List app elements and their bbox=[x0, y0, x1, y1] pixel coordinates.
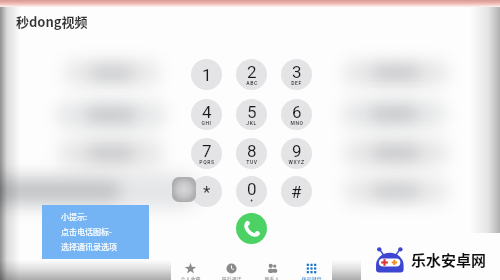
staticText: # bbox=[291, 182, 302, 202]
other: Recents bbox=[226, 263, 237, 274]
staticText: 5 bbox=[247, 102, 257, 122]
button[interactable]: Dialpad bbox=[292, 259, 330, 280]
staticText: 4 bbox=[202, 102, 212, 122]
staticText: 2 bbox=[247, 62, 257, 82]
staticText: 联系人 bbox=[264, 275, 280, 280]
button[interactable]: 4 bbox=[191, 99, 222, 130]
button[interactable]: 2 bbox=[236, 59, 267, 90]
staticText: 1 bbox=[202, 65, 212, 85]
staticText: 8 bbox=[247, 141, 257, 161]
other: Favorites bbox=[185, 263, 196, 274]
staticText: 7 bbox=[202, 141, 212, 161]
staticText: 个人收藏 bbox=[180, 275, 201, 280]
staticText: TUV bbox=[246, 159, 258, 165]
button[interactable]: # bbox=[281, 176, 312, 207]
staticText: * bbox=[203, 182, 211, 202]
button[interactable]: 7 bbox=[191, 138, 222, 169]
staticText: GHI bbox=[201, 120, 212, 126]
staticText: JKL bbox=[246, 120, 257, 126]
staticText: 3 bbox=[292, 62, 302, 82]
staticText: 选择通讯录选项 bbox=[61, 241, 117, 253]
staticText: MNO bbox=[290, 120, 304, 126]
staticText: + bbox=[250, 197, 254, 203]
button[interactable]: 9 bbox=[281, 138, 312, 169]
button[interactable]: 小提示: bbox=[42, 205, 149, 259]
button[interactable]: 1 bbox=[191, 59, 222, 90]
button[interactable]: Call bbox=[236, 213, 267, 244]
button[interactable]: 3 bbox=[281, 59, 312, 90]
button[interactable]: 0 bbox=[236, 176, 267, 207]
button[interactable]: 6 bbox=[281, 99, 312, 130]
staticText: 9 bbox=[292, 141, 302, 161]
other: Contacts bbox=[267, 263, 278, 274]
staticText: PQRS bbox=[199, 159, 215, 165]
staticText: 乐水安卓网 bbox=[411, 249, 487, 271]
button[interactable]: Contacts bbox=[253, 259, 291, 280]
staticText: ABC bbox=[246, 80, 258, 86]
staticText: DEF bbox=[291, 80, 302, 86]
button[interactable]: * bbox=[191, 176, 222, 207]
button[interactable]: 8 bbox=[236, 138, 267, 169]
staticText: 拨号键盘 bbox=[301, 275, 322, 280]
other: Dialpad bbox=[306, 263, 317, 274]
staticText: 秒dong视频 bbox=[16, 12, 88, 31]
staticText: 0 bbox=[247, 179, 257, 199]
button[interactable]: Recents bbox=[212, 259, 250, 280]
staticText: 小提示: bbox=[61, 211, 88, 223]
button[interactable]: Favorites bbox=[171, 259, 209, 280]
button[interactable]: 5 bbox=[236, 99, 267, 130]
staticText: 点击电话图标- bbox=[61, 226, 112, 238]
staticText: WXYZ bbox=[288, 159, 305, 165]
staticText: 最近通话 bbox=[221, 275, 242, 280]
staticText: 6 bbox=[292, 102, 302, 122]
